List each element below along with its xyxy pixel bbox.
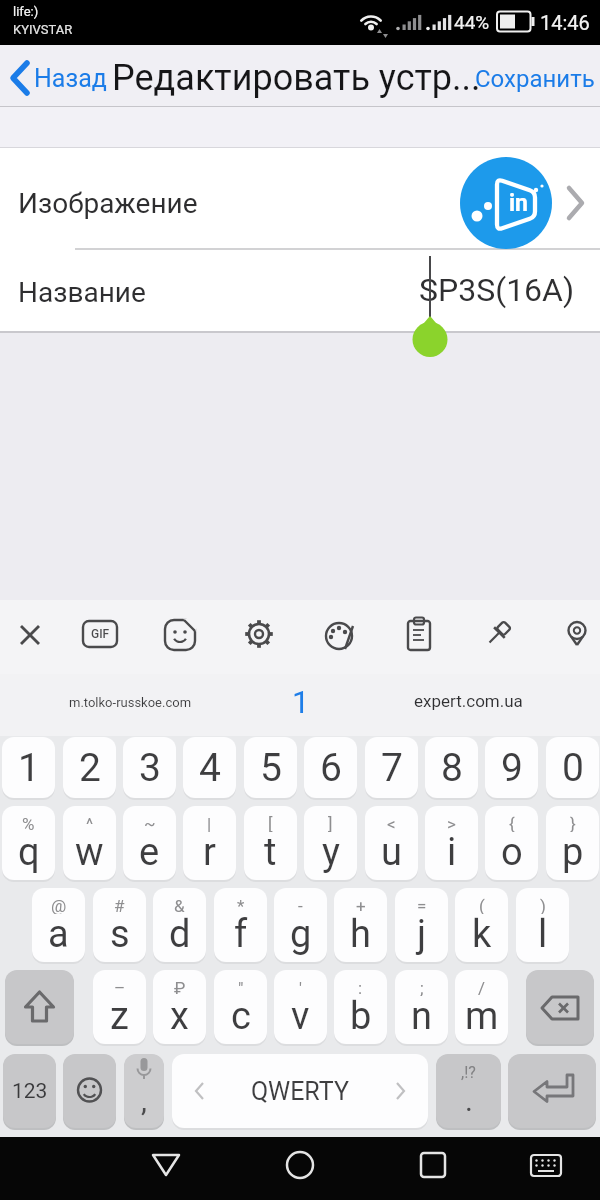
staticText: 4: [199, 745, 221, 791]
staticText: |: [207, 814, 212, 832]
staticText: ": [238, 978, 244, 996]
staticText: expert.com.ua: [414, 691, 523, 711]
staticText: 2: [79, 745, 101, 791]
staticText: 8: [441, 745, 463, 791]
staticText: b: [350, 994, 372, 1039]
staticText: Редактировать устр...: [112, 57, 481, 99]
staticText: 1: [292, 684, 310, 720]
staticText: Назад: [34, 64, 107, 93]
staticText: y: [322, 830, 340, 875]
staticText: -: [298, 896, 303, 914]
staticText: KYIVSTAR: [13, 22, 73, 37]
staticText: m: [465, 994, 499, 1039]
staticText: [: [268, 814, 273, 832]
staticText: x: [170, 994, 189, 1039]
staticText: &: [174, 896, 185, 914]
staticText: +: [356, 896, 366, 914]
staticText: GIF: [91, 627, 110, 641]
staticText: g: [290, 912, 312, 957]
staticText: k: [472, 912, 492, 957]
staticText: Сохранить: [475, 65, 595, 93]
staticText: #: [114, 896, 125, 914]
staticText: ,: [141, 1083, 147, 1118]
staticText: t: [264, 830, 277, 875]
staticText: ;: [420, 978, 424, 996]
staticText: >: [447, 814, 456, 832]
staticText: ]: [328, 814, 333, 832]
staticText: QWERTY: [251, 1077, 349, 1106]
staticText: ): [540, 896, 546, 914]
staticText: 9: [501, 745, 523, 791]
staticText: (: [479, 896, 485, 914]
staticText: q: [18, 830, 40, 875]
staticText: :: [358, 978, 363, 996]
staticText: ^: [86, 814, 94, 832]
staticText: {: [509, 814, 515, 832]
staticText: <: [387, 814, 396, 832]
staticText: j: [417, 912, 427, 957]
staticText: d: [169, 912, 191, 957]
staticText: ': [299, 978, 302, 996]
staticText: p: [562, 830, 584, 875]
staticText: r: [203, 830, 216, 875]
staticText: i: [447, 830, 457, 875]
staticText: 3: [139, 745, 161, 791]
staticText: .: [465, 1083, 473, 1118]
staticText: 1: [18, 745, 40, 791]
staticText: =: [417, 896, 427, 914]
staticText: %: [22, 814, 35, 832]
staticText: SP3S(16A): [419, 271, 575, 309]
staticText: Название: [18, 276, 146, 309]
staticText: ,!?: [461, 1063, 476, 1082]
staticText: z: [110, 994, 129, 1039]
staticText: }: [570, 814, 576, 832]
staticText: –: [114, 978, 126, 996]
staticText: @: [51, 896, 67, 914]
staticText: a: [48, 912, 69, 957]
staticText: o: [501, 830, 523, 875]
staticText: ~: [144, 814, 156, 832]
staticText: f: [234, 912, 248, 957]
staticText: in: [509, 190, 528, 217]
staticText: e: [139, 830, 160, 875]
staticText: 6: [320, 745, 342, 791]
staticText: 123: [12, 1079, 48, 1104]
staticText: w: [75, 830, 104, 875]
staticText: 14:46: [540, 11, 590, 34]
staticText: /: [478, 978, 486, 996]
staticText: ₽: [174, 978, 186, 996]
staticText: 44%: [454, 11, 490, 33]
staticText: v: [291, 994, 310, 1039]
staticText: 7: [381, 745, 403, 791]
staticText: s: [110, 912, 130, 957]
staticText: n: [411, 994, 432, 1039]
staticText: life:): [13, 4, 39, 19]
staticText: c: [231, 994, 251, 1039]
staticText: h: [350, 912, 371, 957]
staticText: Изображение: [18, 187, 198, 220]
staticText: l: [538, 912, 548, 957]
staticText: 5: [260, 745, 282, 791]
staticText: *: [237, 896, 245, 914]
staticText: u: [381, 830, 402, 875]
staticText: 0: [562, 745, 584, 791]
staticText: m.tolko-russkoe.com: [69, 695, 192, 710]
